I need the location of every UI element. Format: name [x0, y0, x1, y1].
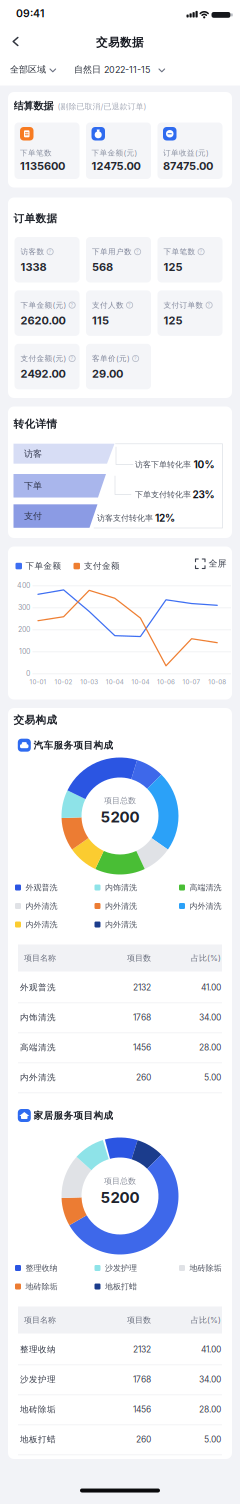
staticText: 结算数据: [13, 100, 53, 112]
staticText: 内外清洗: [20, 1072, 56, 1083]
staticText: 87475.00: [163, 159, 213, 173]
staticText: 1338: [20, 260, 46, 274]
staticText: 整理收纳: [25, 1263, 57, 1273]
staticText: 1135600: [20, 159, 65, 173]
staticText: 400: [17, 581, 30, 590]
staticText: 下单笔数: [163, 247, 195, 256]
staticText: 沙发护理: [105, 1263, 137, 1273]
staticText: 34.00: [199, 1374, 221, 1385]
staticText: 交易数据: [96, 35, 144, 50]
staticText: 0: [26, 669, 30, 678]
staticText: 高端清洗: [189, 882, 221, 893]
staticText: 125: [163, 260, 182, 274]
staticText: 支付订单数: [163, 300, 203, 310]
staticText: 地板打蜡: [105, 1281, 137, 1292]
staticText: 内饰清洗: [20, 1012, 56, 1023]
staticText: 10-02: [55, 678, 73, 686]
staticText: 占比(%): [191, 1315, 221, 1325]
staticText: 项目总数: [104, 1176, 136, 1186]
staticText: 2132: [133, 1344, 151, 1355]
staticText: 访客数: [20, 247, 44, 256]
staticText: 115: [92, 314, 109, 327]
staticText: 项目数: [127, 953, 151, 963]
staticText: 家居服务项目构成: [33, 1110, 113, 1122]
staticText: 外观普洗: [25, 882, 57, 893]
staticText: ?: [71, 302, 74, 308]
staticText: 支付金额: [84, 561, 120, 571]
staticText: 41.00: [201, 1344, 221, 1355]
staticText: 5200: [100, 1188, 139, 1206]
staticText: 100: [19, 647, 30, 656]
staticText: 41.00: [201, 982, 221, 993]
staticText: 内外清洗: [105, 919, 137, 930]
button[interactable]: 全部区域: [0, 0, 240, 1504]
staticText: 34.00: [199, 1012, 221, 1023]
staticText: ?: [128, 302, 131, 308]
staticText: 568: [92, 260, 113, 274]
staticText: 支付人数: [92, 300, 124, 310]
staticText: 全部区域: [10, 64, 46, 75]
staticText: 汽车服务项目构成: [33, 739, 113, 751]
button[interactable]: Back: [0, 0, 240, 1504]
staticText: 12%: [155, 512, 175, 524]
staticText: 300: [18, 603, 30, 612]
staticText: 28.00: [199, 1042, 221, 1053]
staticText: ?: [208, 302, 211, 308]
staticText: 10-01: [29, 678, 46, 686]
staticText: 5200: [100, 808, 139, 826]
staticText: 10-08: [208, 678, 226, 686]
staticText: 1768: [133, 1012, 151, 1023]
staticText: 10-04: [106, 678, 124, 686]
staticText: 5.00: [204, 1072, 221, 1083]
staticText: 12475.00: [91, 159, 140, 173]
staticText: 09:41: [16, 7, 44, 20]
staticText: 访客支付转化率: [97, 513, 153, 523]
button[interactable]: 全屏: [0, 0, 240, 1504]
staticText: 260: [136, 1434, 151, 1445]
staticText: 200: [18, 625, 30, 634]
staticText: 下单金额(元): [20, 300, 66, 310]
staticText: ?: [134, 355, 137, 361]
staticText: 1456: [133, 1042, 151, 1053]
staticText: 全屏: [208, 558, 226, 569]
staticText: 地砖除垢: [25, 1281, 57, 1292]
staticText: 转化详情: [13, 417, 57, 431]
staticText: 支付金额(元): [20, 354, 66, 363]
staticText: 外观普洗: [20, 982, 56, 993]
staticText: 1768: [133, 1374, 151, 1385]
staticText: 占比(%): [191, 953, 221, 963]
staticText: 订单数据: [13, 212, 57, 225]
staticText: 下单笔数: [20, 148, 52, 158]
staticText: 下单金额: [25, 561, 61, 571]
staticText: 10-03: [80, 678, 98, 686]
staticText: 23%: [192, 488, 214, 501]
staticText: ?: [71, 355, 74, 361]
staticText: ?: [136, 249, 139, 255]
staticText: ?: [200, 249, 203, 255]
staticText: 订单收益(元): [163, 148, 209, 158]
staticText: (剔除已取消/已退款订单): [57, 101, 146, 112]
staticText: 项目名称: [24, 1315, 56, 1325]
staticText: 项目数: [127, 1315, 151, 1325]
staticText: 整理收纳: [20, 1344, 56, 1355]
staticText: 内外清洗: [105, 901, 137, 911]
staticText: 项目名称: [24, 953, 56, 963]
staticText: 访客下单转化率: [135, 459, 191, 470]
staticText: 访客: [24, 448, 42, 459]
staticText: 29.00: [92, 367, 123, 380]
staticText: 客单价(元): [92, 354, 130, 363]
staticText: 地板打蜡: [20, 1434, 56, 1445]
staticText: ?: [49, 249, 52, 255]
staticText: 内外清洗: [189, 901, 221, 911]
staticText: 交易构成: [13, 713, 57, 727]
staticText: 地砖除垢: [20, 1404, 56, 1415]
staticText: 10-04: [131, 678, 149, 686]
staticText: 自然日 2022-11-15: [74, 64, 150, 75]
staticText: 28.00: [199, 1404, 221, 1415]
staticText: 下单用户数: [92, 247, 132, 256]
staticText: 地砖除垢: [189, 1263, 221, 1273]
button[interactable]: 自然日 2022-11-15: [0, 0, 240, 1504]
staticText: 沙发护理: [20, 1374, 56, 1385]
staticText: 5.00: [204, 1434, 221, 1445]
staticText: 2132: [133, 982, 151, 993]
